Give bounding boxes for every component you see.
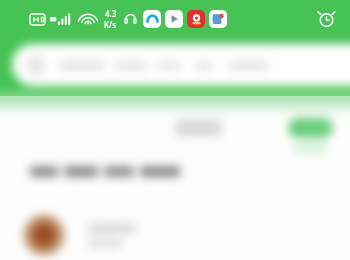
- button[interactable]: [0, 205, 350, 260]
- button[interactable]: [288, 118, 333, 138]
- button[interactable]: [176, 120, 222, 136]
- button[interactable]: Search: [12, 44, 350, 86]
- staticText: 4.3: [105, 8, 117, 19]
- staticText: K/s: [104, 19, 117, 30]
- button[interactable]: Alarm: [316, 9, 336, 29]
